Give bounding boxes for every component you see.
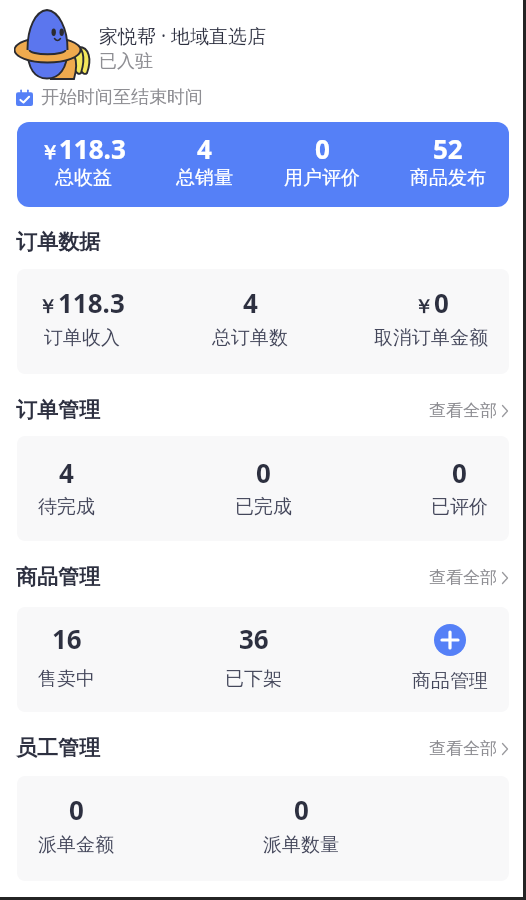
button[interactable]: 36 — [225, 621, 282, 698]
button[interactable]: 16 — [38, 621, 95, 698]
staticText: 52 — [433, 131, 463, 166]
button[interactable]: 0 — [263, 792, 339, 866]
button[interactable]: 52 — [410, 131, 486, 199]
staticText: 商品管理 — [16, 564, 100, 590]
staticText: 商品管理 — [412, 669, 488, 693]
staticText: 商品发布 — [410, 166, 486, 190]
button[interactable]: 0 — [38, 792, 114, 866]
staticText: 查看全部 — [429, 400, 497, 421]
staticText: 总销量 — [176, 166, 233, 190]
staticText: 售卖中 — [38, 667, 95, 691]
staticText: 派单数量 — [263, 833, 339, 857]
button[interactable]: 4 — [38, 455, 95, 523]
staticText: 0 — [294, 792, 309, 827]
button[interactable]: 商品管理 — [412, 624, 488, 696]
button[interactable]: 家悦帮 · 地域直选店 — [14, 9, 526, 85]
staticText: 订单管理 — [16, 397, 100, 423]
button[interactable]: 4 — [176, 131, 233, 199]
staticText: 家悦帮 · 地域直选店 — [99, 23, 266, 49]
staticText: 0 — [256, 455, 271, 490]
staticText: 总订单数 — [212, 326, 288, 350]
button[interactable]: ￥ — [374, 285, 488, 359]
staticText: 0 — [452, 455, 467, 490]
button[interactable]: 0 — [431, 455, 488, 523]
button[interactable]: 0 — [284, 131, 360, 199]
button[interactable]: 开始时间至结束时间 — [16, 86, 203, 109]
staticText: 用户评价 — [284, 166, 360, 190]
staticText: 36 — [239, 621, 269, 656]
staticText: 0 — [315, 131, 330, 166]
staticText: 总收益 — [55, 166, 112, 190]
staticText: 订单收入 — [44, 326, 120, 350]
staticText: 已入驻 — [99, 50, 153, 73]
button[interactable]: 4 — [212, 285, 288, 359]
staticText: 取消订单金额 — [374, 326, 488, 350]
staticText: 已评价 — [431, 495, 488, 519]
button[interactable]: 查看全部 — [429, 567, 509, 588]
staticText: 查看全部 — [429, 738, 497, 759]
staticText: 订单数据 — [16, 229, 100, 255]
button[interactable]: ￥ — [40, 131, 126, 199]
staticText: 118.3 — [58, 285, 125, 320]
staticText: 118.3 — [59, 131, 126, 166]
button[interactable]: 查看全部 — [429, 400, 509, 421]
button[interactable]: 查看全部 — [429, 738, 509, 759]
staticText: ￥ — [40, 141, 59, 165]
staticText: 开始时间至结束时间 — [41, 86, 203, 109]
staticText: ￥ — [38, 295, 57, 319]
staticText: 已完成 — [235, 495, 292, 519]
staticText: 0 — [434, 285, 449, 320]
staticText: 派单金额 — [38, 833, 114, 857]
staticText: 4 — [243, 285, 258, 320]
staticText: 查看全部 — [429, 567, 497, 588]
button[interactable]: ￥ — [38, 285, 125, 359]
staticText: 待完成 — [38, 495, 95, 519]
staticText: 已下架 — [225, 667, 282, 691]
staticText: 4 — [197, 131, 212, 166]
staticText: 4 — [59, 455, 74, 490]
button[interactable]: 0 — [235, 455, 292, 523]
staticText: 0 — [69, 792, 84, 827]
staticText: 16 — [52, 621, 82, 656]
staticText: ￥ — [414, 295, 433, 319]
staticText: 员工管理 — [16, 735, 100, 761]
